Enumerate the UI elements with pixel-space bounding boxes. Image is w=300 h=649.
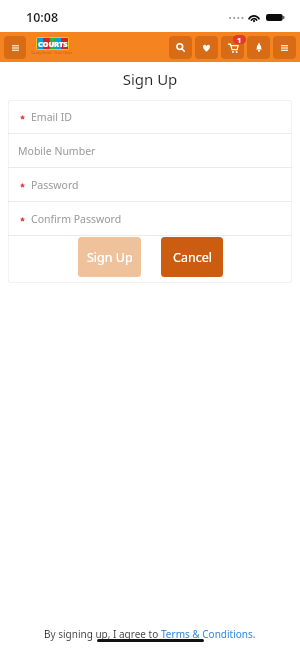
staticText: Email ID (31, 110, 72, 124)
button[interactable]: More (273, 36, 296, 59)
button[interactable]: Confirm Password (8, 202, 292, 235)
button[interactable]: Search (169, 36, 192, 59)
button[interactable]: Courts logo (31, 37, 73, 55)
button[interactable]: Cancel (161, 237, 223, 277)
staticText: Sign Up (0, 69, 300, 89)
button[interactable]: Wishlist (195, 36, 218, 59)
button[interactable]: Notifications (247, 36, 270, 59)
button[interactable]: Mobile Number (8, 134, 292, 167)
staticText: Mobile Number (18, 144, 96, 158)
staticText: Password (31, 178, 79, 192)
staticText: 1 (237, 35, 242, 44)
staticText: 10:08 (26, 9, 59, 26)
button[interactable]: Email ID (8, 100, 292, 133)
button[interactable]: Password (8, 168, 292, 201)
staticText: Cancel (173, 249, 212, 266)
staticText: Sign Up (87, 249, 133, 266)
button[interactable]: Menu (4, 36, 26, 59)
button[interactable]: Terms & Conditions. (161, 627, 256, 641)
staticText: COURTS (38, 39, 68, 49)
staticText: Confirm Password (31, 212, 122, 226)
button[interactable]: Cart (221, 36, 244, 59)
button[interactable]: Sign Up (78, 237, 141, 277)
staticText: By signing up, I agree to (44, 627, 161, 641)
staticText: Quality Brands · Great Choice (31, 51, 73, 55)
